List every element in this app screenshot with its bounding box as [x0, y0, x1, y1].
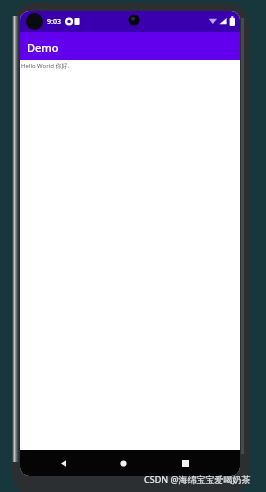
staticText: 9:03	[47, 17, 61, 27]
button[interactable]: Recent apps	[173, 450, 197, 476]
button[interactable]: Back	[51, 450, 75, 476]
button[interactable]: Home	[111, 450, 135, 476]
staticText: CSDN @海绵宝宝爱喝奶茶	[144, 473, 251, 485]
staticText: Hello World 你好.	[21, 62, 70, 70]
staticText: Demo	[27, 40, 59, 55]
